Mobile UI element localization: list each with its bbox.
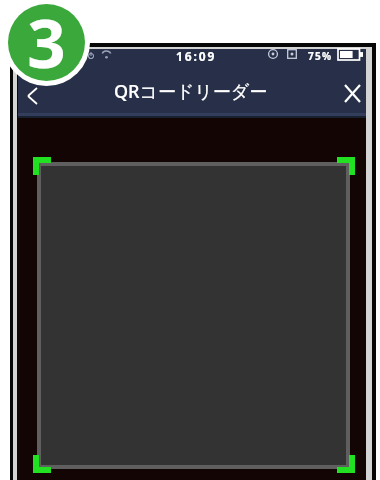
- button[interactable]: Back: [18, 75, 56, 115]
- staticText: 16:09: [176, 48, 217, 64]
- button[interactable]: Scan QR code viewfinder: [33, 157, 355, 473]
- staticText: 3: [27, 4, 66, 73]
- staticText: 75%: [308, 49, 333, 63]
- button[interactable]: Close: [326, 75, 366, 113]
- staticText: QRコードリーダー: [114, 79, 268, 104]
